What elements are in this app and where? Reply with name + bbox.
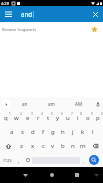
staticText: 4:28 bbox=[1, 1, 9, 6]
button[interactable]: k bbox=[78, 125, 88, 139]
staticText: s bbox=[21, 128, 24, 136]
staticText: am bbox=[48, 101, 55, 107]
staticText: u bbox=[66, 114, 70, 122]
button[interactable]: am bbox=[38, 97, 65, 111]
button[interactable]: , bbox=[14, 153, 24, 167]
staticText: w bbox=[14, 114, 19, 122]
staticText: 0 bbox=[101, 112, 103, 116]
staticText: a bbox=[10, 128, 14, 136]
button[interactable]: n bbox=[68, 139, 78, 153]
staticText: AM bbox=[75, 101, 82, 107]
button[interactable]: Google bbox=[0, 97, 11, 111]
button[interactable]: p bbox=[93, 111, 103, 125]
staticText: and bbox=[21, 10, 33, 18]
button[interactable]: t bbox=[43, 111, 53, 125]
button[interactable]: e bbox=[22, 111, 33, 125]
button[interactable]: x bbox=[27, 139, 38, 153]
staticText: 7 bbox=[71, 112, 73, 116]
staticText: c bbox=[42, 142, 45, 150]
staticText: 2 bbox=[20, 112, 22, 116]
button[interactable]: Voice input bbox=[92, 97, 103, 111]
staticText: v bbox=[51, 142, 55, 150]
button[interactable]: j bbox=[68, 125, 78, 139]
button[interactable]: l bbox=[88, 125, 98, 139]
button[interactable]: Shift bbox=[0, 139, 16, 153]
staticText: n bbox=[71, 142, 75, 150]
staticText: z bbox=[20, 142, 23, 150]
button[interactable]: Backspace bbox=[88, 139, 103, 153]
staticText: g bbox=[51, 128, 55, 136]
staticText: l bbox=[92, 128, 94, 136]
button[interactable]: Browse hogwarts bbox=[0, 24, 103, 35]
button[interactable]: f bbox=[38, 125, 48, 139]
staticText: 4 bbox=[41, 112, 43, 116]
button[interactable]: Space bbox=[32, 153, 80, 167]
button[interactable]: ?123 bbox=[0, 153, 14, 167]
button[interactable]: Recent apps bbox=[69, 167, 85, 183]
button[interactable]: Emoji bbox=[23, 153, 32, 167]
button[interactable]: z bbox=[16, 139, 27, 153]
staticText: h bbox=[61, 128, 65, 136]
staticText: Browse hogwarts bbox=[2, 27, 37, 33]
staticText: 5 bbox=[51, 112, 53, 116]
button[interactable]: i bbox=[73, 111, 83, 125]
staticText: e bbox=[26, 114, 30, 122]
button[interactable]: s bbox=[17, 125, 28, 139]
staticText: f bbox=[42, 128, 45, 136]
staticText: k bbox=[81, 128, 85, 136]
button[interactable]: Back bbox=[17, 167, 33, 183]
staticText: . bbox=[83, 157, 85, 164]
button[interactable]: . bbox=[80, 153, 88, 167]
staticText: d bbox=[31, 128, 35, 136]
staticText: q bbox=[4, 114, 8, 122]
staticText: x bbox=[31, 142, 35, 150]
button[interactable]: c bbox=[38, 139, 48, 153]
button[interactable]: b bbox=[58, 139, 68, 153]
staticText: p bbox=[96, 114, 100, 122]
button[interactable]: y bbox=[53, 111, 63, 125]
button[interactable]: u bbox=[63, 111, 73, 125]
staticText: 1 bbox=[9, 112, 11, 116]
staticText: , bbox=[18, 157, 20, 164]
staticText: t bbox=[47, 114, 50, 122]
button[interactable]: d bbox=[28, 125, 38, 139]
staticText: i bbox=[77, 114, 79, 122]
button[interactable]: g bbox=[48, 125, 58, 139]
button[interactable]: v bbox=[48, 139, 58, 153]
staticText: m bbox=[80, 142, 86, 150]
staticText: r bbox=[37, 114, 40, 122]
button[interactable]: q bbox=[0, 111, 11, 125]
button[interactable]: Search bbox=[86, 153, 101, 167]
button[interactable]: Home bbox=[44, 167, 60, 183]
button[interactable]: Switch keyboard bbox=[90, 169, 102, 181]
button[interactable]: w bbox=[11, 111, 22, 125]
staticText: ?123 bbox=[3, 158, 12, 163]
staticText: 6 bbox=[61, 112, 63, 116]
staticText: y bbox=[56, 114, 60, 122]
staticText: j bbox=[72, 128, 74, 136]
button[interactable]: AM bbox=[65, 97, 92, 111]
button[interactable]: o bbox=[83, 111, 93, 125]
staticText: 3 bbox=[31, 112, 33, 116]
button[interactable]: h bbox=[58, 125, 68, 139]
staticText: 8 bbox=[80, 112, 82, 116]
button[interactable]: Clear search bbox=[87, 6, 103, 22]
button[interactable]: r bbox=[33, 111, 43, 125]
staticText: o bbox=[86, 114, 90, 122]
button[interactable]: a bbox=[6, 125, 17, 139]
button[interactable]: an bbox=[11, 97, 38, 111]
button[interactable]: m bbox=[78, 139, 88, 153]
button[interactable]: Menu bbox=[0, 6, 16, 22]
staticText: 9 bbox=[91, 112, 93, 116]
staticText: an bbox=[22, 101, 28, 107]
staticText: b bbox=[61, 142, 65, 150]
